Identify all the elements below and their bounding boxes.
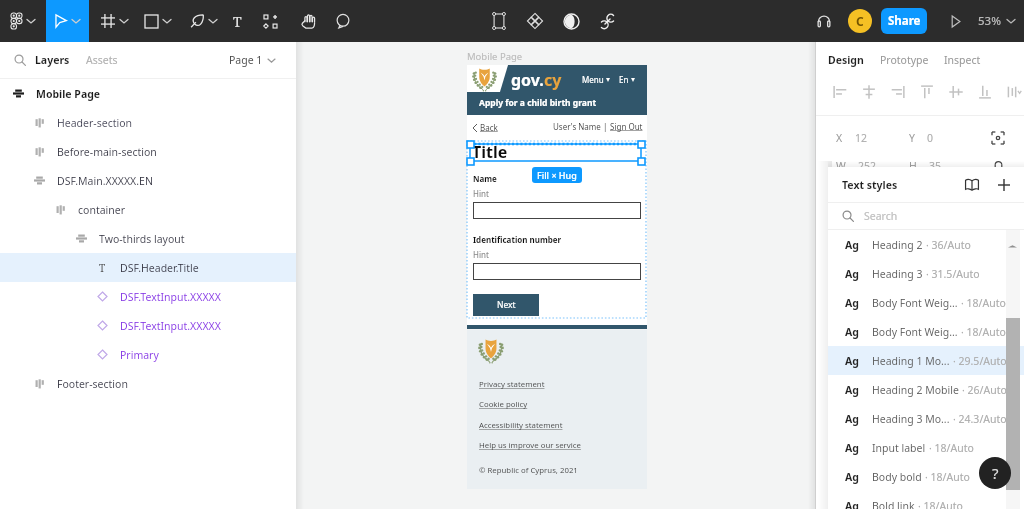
button[interactable]: Ag [828, 433, 1024, 462]
staticText: Heading 2 [872, 238, 923, 252]
button[interactable]: Text tool [224, 0, 250, 42]
button[interactable]: Constraints [990, 130, 1006, 146]
button[interactable]: Ag [828, 288, 1024, 317]
button[interactable]: Design [824, 49, 868, 71]
staticText: Prototype [880, 53, 929, 67]
button[interactable]: Align left [825, 80, 854, 104]
button[interactable]: Ag [828, 259, 1024, 288]
button[interactable]: Share [881, 8, 927, 34]
button[interactable]: Ag [828, 462, 1024, 491]
button[interactable]: Search [842, 203, 1024, 229]
button[interactable]: Ag [828, 404, 1024, 433]
button[interactable]: Ag [828, 230, 1024, 259]
button[interactable]: Align horizontal centers [854, 80, 883, 104]
button[interactable]: Identification number input [473, 263, 641, 280]
staticText: Inspect [944, 53, 981, 67]
button[interactable]: container [0, 195, 296, 224]
staticText: Page 1 [229, 53, 263, 67]
button[interactable]: Components [255, 0, 285, 42]
button[interactable]: Privacy statement [479, 379, 545, 390]
button[interactable]: Mobile Page [0, 79, 296, 108]
button[interactable]: Back [471, 120, 500, 135]
button[interactable]: 53% [974, 0, 1019, 42]
button[interactable]: Plugins [521, 0, 549, 42]
staticText: Ag [845, 470, 859, 484]
button[interactable]: Hand tool [293, 0, 323, 42]
staticText: container [78, 203, 126, 217]
staticText: User's Name | [553, 121, 610, 132]
button[interactable]: Align vertical centers [941, 80, 970, 104]
staticText: · 18/Auto [918, 499, 963, 509]
staticText: · 18/Auto [961, 325, 1006, 339]
button[interactable]: Ag [828, 317, 1024, 346]
button[interactable]: Primary [0, 340, 296, 369]
staticText: 35 [929, 159, 942, 173]
button[interactable]: Pen tool [181, 0, 225, 42]
button[interactable]: Accessibility statement [479, 420, 563, 431]
button[interactable]: DSF.TextInput.XXXXX [0, 311, 296, 340]
staticText: · 24.3/Auto [953, 412, 1007, 426]
staticText: Hint [473, 249, 489, 260]
button[interactable]: Search layers [12, 52, 28, 68]
button[interactable]: Contrast [557, 0, 585, 42]
staticText: cy [544, 69, 562, 91]
button[interactable]: Ag [828, 491, 1024, 509]
staticText: Menu [582, 74, 604, 85]
staticText: · 31.5/Auto [926, 267, 980, 281]
button[interactable]: Account [848, 9, 872, 33]
button[interactable]: Align right [883, 80, 912, 104]
staticText: Header-section [57, 116, 133, 130]
staticText: Fill × Hug [537, 169, 577, 181]
button[interactable]: Distribute [999, 80, 1024, 104]
button[interactable]: Help [979, 457, 1011, 489]
button[interactable]: Shape tool [136, 0, 180, 42]
button[interactable]: Prototype [876, 49, 933, 71]
button[interactable]: Inspect [940, 49, 985, 71]
staticText: Assets [86, 53, 118, 67]
button[interactable]: En [617, 72, 637, 87]
staticText: Ag [845, 296, 859, 310]
button[interactable]: Two-thirds layout [0, 224, 296, 253]
staticText: ? [992, 463, 999, 483]
button[interactable]: Audio [810, 0, 838, 42]
button[interactable]: DSF.TextInput.XXXXX [0, 282, 296, 311]
button[interactable]: Help us improve our service [479, 440, 581, 451]
staticText: DSF.Header.Title [120, 261, 199, 275]
staticText: Body Font Weig... [872, 325, 958, 339]
button[interactable]: Cookie policy [479, 399, 528, 410]
button[interactable]: Create style [994, 175, 1014, 195]
staticText: · 18/Auto [961, 296, 1006, 310]
staticText: · 18/Auto [925, 470, 970, 484]
button[interactable]: Align bottom [970, 80, 999, 104]
button[interactable]: Ag [828, 375, 1024, 404]
staticText: gov. [511, 69, 544, 91]
button[interactable]: Selection [485, 0, 513, 42]
button[interactable]: Footer-section [0, 369, 296, 398]
button[interactable]: Libraries [962, 175, 982, 195]
staticText: Ag [845, 267, 859, 281]
staticText: Search [864, 209, 898, 223]
button[interactable]: Header-section [0, 108, 296, 137]
button[interactable]: Assets [83, 48, 121, 72]
button[interactable]: Frame tool [93, 0, 136, 42]
button[interactable]: Lock aspect ratio [990, 158, 1006, 174]
button[interactable]: DSF.Main.XXXXX.EN [0, 166, 296, 195]
button[interactable]: Name input [473, 202, 641, 219]
button[interactable]: T [0, 253, 296, 282]
button[interactable]: Align top [912, 80, 941, 104]
button[interactable]: Sign Out [610, 121, 643, 132]
button[interactable]: Move tool [46, 0, 89, 42]
button[interactable]: Menu [580, 72, 612, 87]
button[interactable]: Page 1 [226, 48, 278, 72]
button[interactable]: Ag [828, 346, 1024, 375]
button[interactable]: Layers [32, 48, 73, 72]
button[interactable]: Comment [328, 0, 358, 42]
button[interactable]: Next [473, 294, 539, 316]
staticText: W [836, 159, 846, 173]
staticText: Identification number [473, 234, 562, 245]
button[interactable]: Present [942, 0, 968, 42]
button[interactable]: Figma menu [4, 0, 41, 42]
staticText: Heading 2 Mobile [872, 383, 959, 397]
button[interactable]: Before-main-section [0, 137, 296, 166]
button[interactable]: Link [593, 0, 621, 42]
